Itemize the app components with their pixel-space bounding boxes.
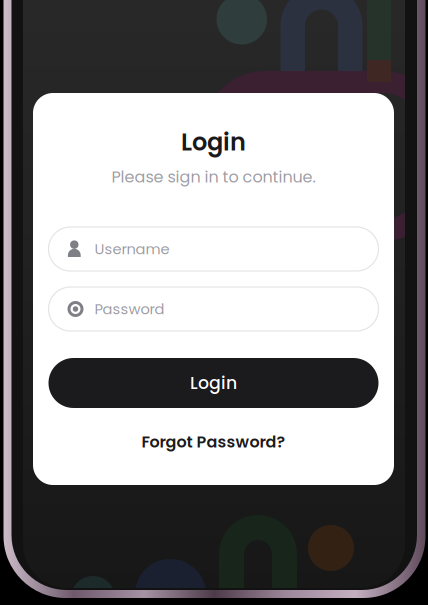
staticText: Please sign in to continue.	[111, 166, 315, 188]
staticText: Login	[181, 125, 246, 159]
button[interactable]: Login	[48, 358, 378, 408]
staticText: Forgot Password?	[141, 431, 285, 453]
staticText: Password	[94, 299, 164, 319]
button[interactable]: Forgot Password?	[113, 430, 313, 454]
staticText: Login	[190, 371, 237, 395]
staticText: Username	[94, 239, 169, 259]
